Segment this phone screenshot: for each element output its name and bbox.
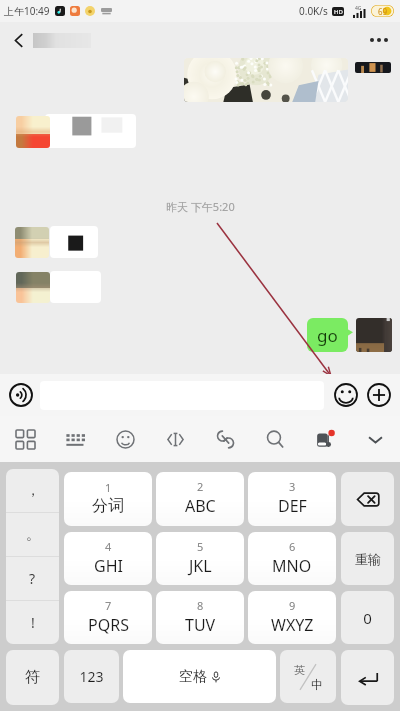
staticText: 69 bbox=[378, 6, 388, 17]
button[interactable]: Switch English Chinese bbox=[280, 650, 336, 703]
staticText: 5 bbox=[197, 539, 204, 554]
button[interactable]: 5 bbox=[156, 532, 244, 585]
staticText: ! bbox=[31, 613, 35, 632]
staticText: 符 bbox=[25, 668, 40, 687]
staticText: 空格 bbox=[179, 668, 207, 686]
button[interactable]: Contact avatar bbox=[16, 272, 50, 303]
button[interactable]: Apps bbox=[0, 416, 50, 462]
button[interactable]: ! bbox=[6, 601, 59, 644]
button[interactable]: 3 bbox=[248, 472, 336, 526]
button[interactable]: 9 bbox=[248, 591, 336, 644]
staticText: 4G bbox=[355, 5, 362, 12]
button[interactable]: 6 bbox=[248, 532, 336, 585]
button[interactable]: Photo message bbox=[184, 58, 348, 102]
button[interactable]: Enter bbox=[341, 650, 394, 705]
button[interactable]: Collapse bbox=[350, 416, 400, 462]
staticText: 英 bbox=[294, 663, 305, 677]
staticText: 7 bbox=[105, 598, 112, 613]
staticText: 8 bbox=[197, 598, 204, 613]
button[interactable]: Contact avatar bbox=[15, 227, 49, 258]
button[interactable]: 。 bbox=[6, 513, 59, 556]
staticText: PQRS bbox=[88, 614, 129, 636]
button[interactable]: 8 bbox=[156, 591, 244, 644]
button[interactable]: Keyboard bbox=[50, 416, 100, 462]
staticText: 6 bbox=[289, 539, 296, 554]
staticText: 4 bbox=[105, 539, 112, 554]
button[interactable]: Back bbox=[0, 22, 36, 58]
staticText: 2 bbox=[197, 479, 204, 494]
button[interactable]: Text tools bbox=[150, 416, 200, 462]
staticText: ， bbox=[26, 482, 40, 500]
staticText: JKL bbox=[189, 555, 212, 577]
staticText: 重输 bbox=[355, 551, 381, 567]
staticText: ? bbox=[29, 569, 36, 588]
staticText: 分词 bbox=[92, 496, 124, 516]
button[interactable]: 重输 bbox=[341, 532, 394, 585]
button[interactable]: Voice input bbox=[5, 379, 37, 411]
staticText: 中 bbox=[311, 677, 323, 692]
button[interactable]: My avatar bbox=[356, 318, 392, 352]
button[interactable] bbox=[45, 114, 136, 148]
button[interactable]: More bbox=[364, 380, 394, 410]
button[interactable]: Emoji bbox=[331, 380, 361, 410]
staticText: go bbox=[317, 324, 338, 347]
button[interactable]: Search bbox=[250, 416, 300, 462]
staticText: ABC bbox=[185, 495, 216, 517]
button[interactable]: Backspace bbox=[341, 472, 394, 526]
button[interactable]: 1 bbox=[64, 472, 152, 526]
staticText: WXYZ bbox=[271, 614, 314, 636]
staticText: HD bbox=[334, 8, 343, 16]
staticText: GHI bbox=[94, 555, 123, 577]
staticText: 1 bbox=[105, 480, 112, 495]
staticText: 0 bbox=[363, 608, 372, 628]
button[interactable]: ， bbox=[6, 469, 59, 512]
button[interactable]: 123 bbox=[64, 650, 119, 703]
button[interactable]: 空格 bbox=[123, 650, 276, 703]
button[interactable]: ? bbox=[6, 557, 59, 600]
button[interactable]: 4 bbox=[64, 532, 152, 585]
button[interactable]: 2 bbox=[156, 472, 244, 526]
staticText: 。 bbox=[26, 526, 40, 544]
staticText: 9 bbox=[289, 598, 296, 613]
staticText: DEF bbox=[278, 495, 307, 517]
button[interactable]: More options bbox=[358, 22, 400, 58]
staticText: 昨天 下午5:20 bbox=[166, 199, 235, 214]
button[interactable]: 7 bbox=[64, 591, 152, 644]
button[interactable]: Clip bbox=[200, 416, 250, 462]
staticText: 123 bbox=[79, 667, 104, 686]
button[interactable]: 0 bbox=[341, 591, 394, 644]
button[interactable]: Avatar bbox=[355, 62, 391, 73]
button[interactable]: Emoji bbox=[100, 416, 150, 462]
staticText: 3 bbox=[289, 479, 296, 494]
button[interactable]: 符 bbox=[6, 650, 59, 705]
staticText: 上午10:49 bbox=[4, 4, 50, 18]
staticText: 0.0K/s bbox=[299, 4, 328, 18]
button[interactable]: Contact avatar bbox=[16, 116, 50, 148]
button[interactable]: go bbox=[307, 318, 348, 352]
staticText: TUV bbox=[185, 614, 216, 636]
button[interactable] bbox=[50, 226, 98, 258]
staticText: MNO bbox=[272, 555, 312, 577]
button[interactable]: Dictionary bbox=[300, 416, 350, 462]
